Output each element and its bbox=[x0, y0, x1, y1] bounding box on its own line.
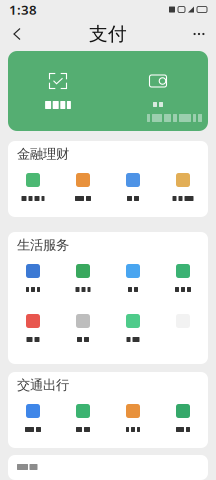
button[interactable] bbox=[58, 173, 108, 201]
button[interactable] bbox=[108, 404, 158, 432]
button[interactable] bbox=[108, 314, 158, 342]
button[interactable]: More bbox=[185, 20, 213, 48]
button[interactable] bbox=[58, 264, 108, 292]
staticText: 生活服务 bbox=[17, 237, 69, 253]
button[interactable] bbox=[8, 51, 108, 131]
button[interactable]: Back bbox=[3, 20, 31, 48]
button[interactable] bbox=[158, 404, 208, 432]
button[interactable] bbox=[8, 404, 58, 432]
staticText: 支付 bbox=[89, 22, 127, 45]
button[interactable] bbox=[158, 173, 208, 201]
button[interactable] bbox=[158, 264, 208, 292]
button[interactable] bbox=[8, 314, 58, 342]
button[interactable] bbox=[58, 404, 108, 432]
button[interactable] bbox=[8, 264, 58, 292]
staticText: 1:38 bbox=[9, 1, 37, 18]
staticText: 交通出行 bbox=[17, 377, 69, 393]
button[interactable] bbox=[58, 314, 108, 342]
button[interactable] bbox=[108, 173, 158, 201]
button[interactable] bbox=[158, 314, 208, 342]
button[interactable] bbox=[108, 264, 158, 292]
button[interactable] bbox=[8, 173, 58, 201]
staticText: 金融理财 bbox=[17, 146, 69, 162]
button[interactable] bbox=[108, 51, 208, 131]
